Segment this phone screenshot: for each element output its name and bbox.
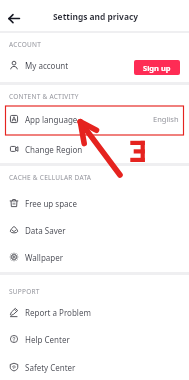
staticText: App language xyxy=(25,114,78,125)
staticText: CONTENT & ACTIVITY xyxy=(9,92,79,101)
staticText: Settings and privacy xyxy=(53,11,139,22)
staticText: Free up space xyxy=(25,198,77,209)
staticText: ACCOUNT xyxy=(9,40,42,49)
button[interactable]: Change Region xyxy=(0,136,189,162)
button[interactable]: Free up space xyxy=(0,190,189,216)
staticText: My account xyxy=(25,60,69,71)
button[interactable]: Sign up xyxy=(134,60,180,75)
staticText: Wallpaper xyxy=(25,252,64,263)
staticText: Change Region xyxy=(25,144,83,155)
button[interactable]: My account xyxy=(0,52,189,78)
button[interactable]: Help Center xyxy=(0,326,189,352)
button[interactable]: Wallpaper xyxy=(0,244,189,270)
staticText: SUPPORT xyxy=(9,287,40,296)
staticText: Data Saver xyxy=(25,225,66,236)
staticText: English xyxy=(153,114,179,124)
button[interactable]: Back xyxy=(5,9,25,29)
button[interactable]: Data Saver xyxy=(0,217,189,243)
staticText: Help Center xyxy=(25,334,70,345)
staticText: Report a Problem xyxy=(25,307,91,318)
staticText: CACHE & CELLULAR DATA xyxy=(9,173,92,182)
button[interactable]: Report a Problem xyxy=(0,299,189,325)
staticText: Safety Center xyxy=(25,362,76,373)
staticText: Sign up xyxy=(143,63,171,73)
button[interactable]: Safety Center xyxy=(0,354,189,380)
button[interactable]: App language xyxy=(0,106,189,132)
